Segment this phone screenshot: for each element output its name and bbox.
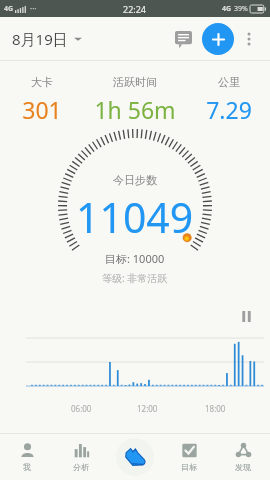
staticText: 22:24 xyxy=(123,3,147,15)
button[interactable]: 活跃时间 xyxy=(83,75,187,125)
staticText: 06:00 xyxy=(71,403,92,414)
staticText: ··· xyxy=(30,3,37,14)
button[interactable]: 公里 xyxy=(187,75,270,125)
staticText: 公里 xyxy=(218,75,240,89)
staticText: 等级: 非常活跃 xyxy=(102,271,168,285)
button[interactable] xyxy=(0,327,270,403)
staticText: 4G xyxy=(4,4,14,14)
staticText: 大卡 xyxy=(31,75,53,89)
button[interactable]: 分析 xyxy=(54,434,108,480)
staticText: 今日步数 xyxy=(113,173,157,187)
staticText: 7.29 xyxy=(206,94,252,125)
button[interactable]: Messages xyxy=(166,22,200,56)
button[interactable]: 大卡 xyxy=(0,75,83,125)
button[interactable]: Steps xyxy=(116,438,154,476)
staticText: 39% xyxy=(234,4,248,14)
staticText: 8月19日 xyxy=(12,29,68,49)
staticText: 12:00 xyxy=(137,403,158,414)
staticText: 18:00 xyxy=(205,403,226,414)
staticText: 目标: 10000 xyxy=(105,251,165,266)
button[interactable]: 发现 xyxy=(216,434,270,480)
staticText: 活跃时间 xyxy=(113,75,157,89)
staticText: 4G xyxy=(222,4,232,14)
staticText: 11049 xyxy=(76,189,194,245)
staticText: 1h 56m xyxy=(94,94,176,125)
staticText: 发现 xyxy=(235,462,251,472)
button[interactable]: Add xyxy=(202,23,234,55)
button[interactable]: 目标 xyxy=(162,434,216,480)
button[interactable]: Pause xyxy=(236,306,256,326)
staticText: 分析 xyxy=(73,462,89,472)
button[interactable]: 8月19日 xyxy=(12,29,82,49)
button[interactable]: More options xyxy=(234,24,264,54)
button[interactable]: 我 xyxy=(0,434,54,480)
staticText: 我 xyxy=(23,462,31,472)
staticText: 301 xyxy=(22,94,62,125)
staticText: 目标 xyxy=(181,462,197,472)
